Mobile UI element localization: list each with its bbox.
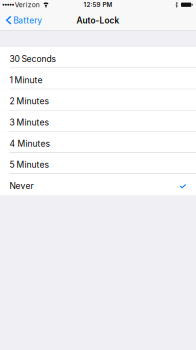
staticText: 4 Minutes — [9, 138, 50, 149]
button[interactable]: 3 Minutes — [0, 110, 196, 132]
staticText: 3 Minutes — [9, 117, 49, 127]
button[interactable]: 1 Minute — [0, 68, 196, 89]
staticText: 30 Seconds — [9, 54, 56, 64]
button[interactable]: 2 Minutes — [0, 89, 196, 110]
staticText: Battery — [13, 15, 42, 25]
button[interactable]: Never — [0, 174, 196, 195]
staticText: 1 Minute — [9, 75, 42, 85]
staticText: 5 Minutes — [9, 160, 49, 170]
staticText: 2 Minutes — [9, 96, 49, 106]
button[interactable]: 5 Minutes — [0, 153, 196, 174]
staticText: Verizon — [15, 1, 40, 9]
button[interactable]: 4 Minutes — [0, 132, 196, 153]
button[interactable]: Battery — [0, 9, 46, 30]
staticText: Never — [9, 181, 33, 191]
staticText: Auto-Lock — [76, 15, 119, 25]
button[interactable]: 30 Seconds — [0, 47, 196, 68]
staticText: 12:59 PM — [83, 1, 112, 8]
